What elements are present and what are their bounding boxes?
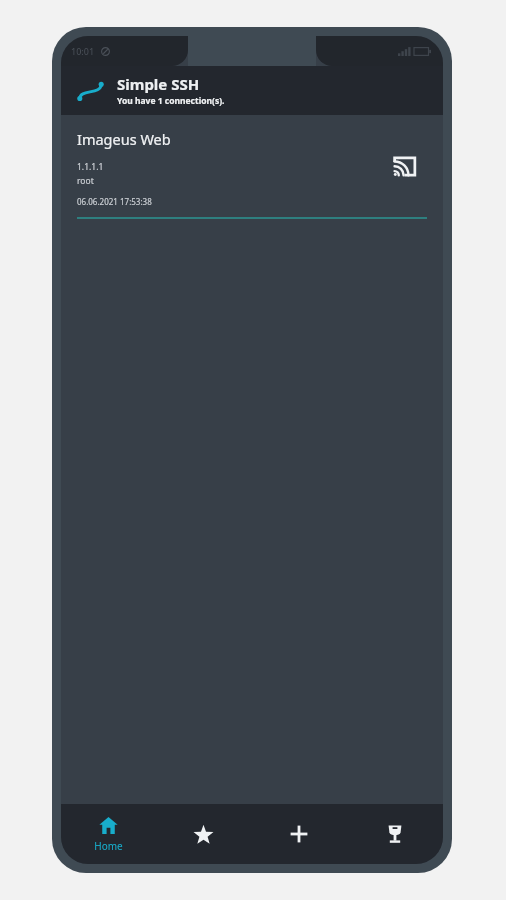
button[interactable]: Add connection [251, 804, 347, 864]
staticText: Simple SSH [117, 74, 200, 94]
button[interactable]: Cast connection [389, 151, 419, 181]
staticText: root [77, 175, 94, 187]
button[interactable]: Imageus Web [61, 115, 443, 219]
staticText: Imageus Web [77, 129, 171, 149]
staticText: 1.1.1.1 [77, 161, 104, 173]
button[interactable]: Favorites [156, 804, 251, 864]
staticText: Home [94, 839, 123, 853]
button[interactable]: Rewards [347, 804, 443, 864]
button[interactable]: Home [61, 804, 156, 864]
staticText: 06.06.2021 17:53:38 [77, 196, 152, 207]
staticText: 10:01 [71, 45, 95, 57]
staticText: You have 1 connection(s). [117, 95, 225, 107]
